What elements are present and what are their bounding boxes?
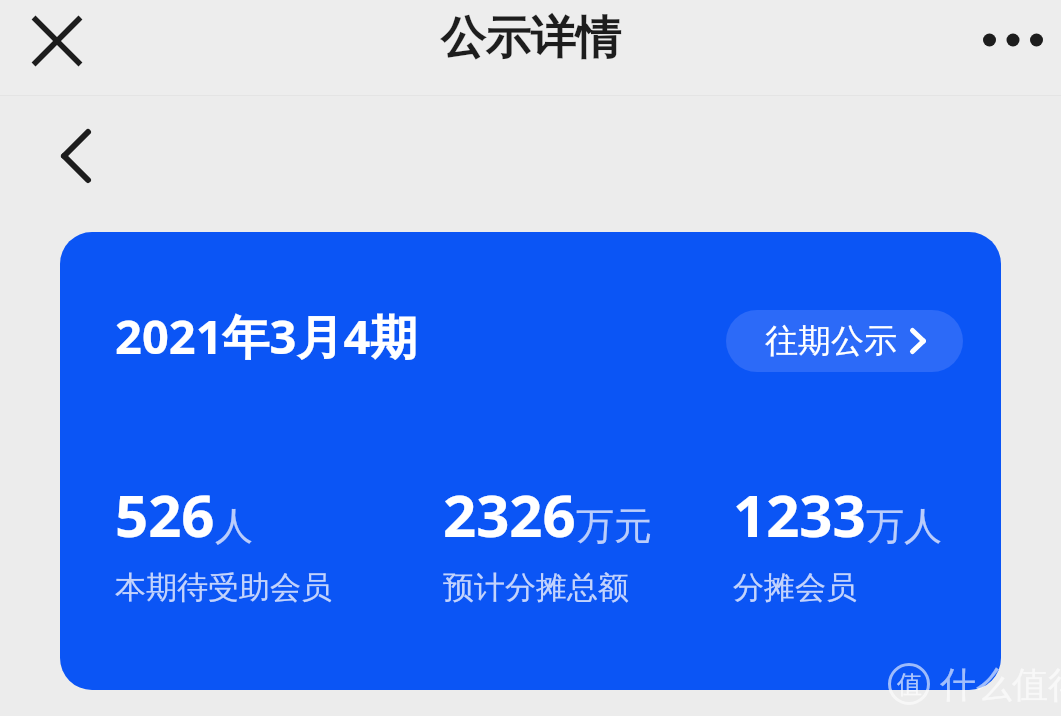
staticText: 2021年3月4期 (115, 304, 418, 368)
staticText: 万人 (866, 502, 942, 550)
button[interactable]: 2326 (443, 475, 652, 607)
staticText: 什么值得买 (940, 662, 1061, 707)
button[interactable]: 1233 (733, 475, 942, 607)
button[interactable]: 526 (115, 475, 332, 607)
staticText: 本期待受助会员 (115, 568, 332, 607)
button[interactable]: Close (20, 4, 94, 78)
button[interactable]: Back (38, 118, 114, 194)
staticText: 预计分摊总额 (443, 568, 629, 607)
staticText: 1233 (733, 475, 866, 554)
staticText: 人 (215, 502, 253, 550)
staticText: 526 (115, 475, 215, 554)
staticText: 分摊会员 (733, 568, 857, 607)
button[interactable]: 2021年3月4期 (60, 232, 1001, 690)
button[interactable]: 往期公示 (726, 310, 963, 372)
staticText: 公示详情 (0, 10, 1061, 67)
button[interactable]: More options (977, 4, 1049, 76)
staticText: 值 (897, 669, 922, 700)
staticText: 2326 (443, 475, 576, 554)
staticText: 万元 (576, 502, 652, 550)
staticText: 往期公示 (765, 320, 897, 362)
